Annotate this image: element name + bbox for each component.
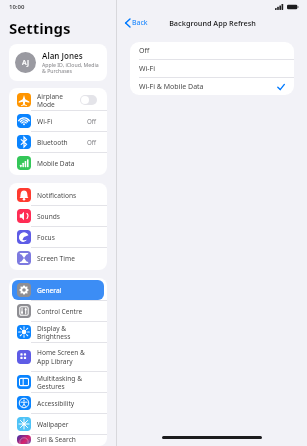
button[interactable]: Screen Time [12,248,104,268]
button[interactable]: Wallpaper [12,414,104,434]
button[interactable]: Wi-Fi [12,111,104,131]
staticText: Accessibility [37,399,75,408]
staticText: Wi-Fi & Mobile Data [139,82,277,92]
staticText: Off [87,138,97,146]
button[interactable]: Notifications [12,185,104,205]
button[interactable]: Control Centre [12,301,104,321]
button[interactable]: Home Screen & [12,343,104,371]
staticText: Off [139,46,285,56]
button[interactable]: Sounds [12,206,104,226]
staticText: Apple ID, iCloud, Media & Purchases [42,61,99,75]
staticText: Focus [37,233,55,242]
staticText: General [37,286,62,295]
staticText: Airplane Mode [37,92,80,109]
staticText: Home Screen & [37,348,85,357]
staticText: AJ [22,58,29,68]
button[interactable]: Wi-Fi & Mobile Data [130,78,294,95]
button[interactable]: Bluetooth [12,132,104,152]
button[interactable]: AJ [9,44,107,81]
staticText: Siri & Search [37,435,76,444]
button[interactable]: Accessibility [12,393,104,413]
staticText: Bluetooth [37,138,68,147]
staticText: Alan Jones [42,50,83,61]
button[interactable]: General [12,280,104,300]
staticText: Screen Time [37,254,75,263]
staticText: Off [87,117,97,125]
staticText: 10:00 [9,3,25,11]
staticText: Mobile Data [37,159,75,168]
staticText: App Library [37,357,73,366]
button[interactable]: Back [123,16,150,30]
staticText: Settings [9,18,71,38]
staticText: Wi-Fi [37,117,53,126]
button[interactable]: Wi-Fi [130,60,294,77]
staticText: Background App Refresh [169,18,256,28]
button[interactable]: Display & Brightness [12,322,104,342]
staticText: Wallpaper [37,420,69,429]
button[interactable]: Off [130,42,294,59]
button[interactable]: Mobile Data [12,153,104,173]
staticText: Control Centre [37,307,83,316]
staticText: Sounds [37,212,60,221]
staticText: Back [132,18,148,28]
button[interactable]: Siri & Search [12,435,104,444]
button[interactable]: Multitasking & Gestures [12,372,104,392]
button[interactable]: Airplane Mode toggle [80,95,97,105]
button[interactable]: Airplane Mode [12,90,104,110]
staticText: Display & Brightness [37,324,97,341]
staticText: Multitasking & Gestures [37,374,97,391]
staticText: Wi-Fi [139,64,285,74]
staticText: Notifications [37,191,77,200]
button[interactable]: Focus [12,227,104,247]
